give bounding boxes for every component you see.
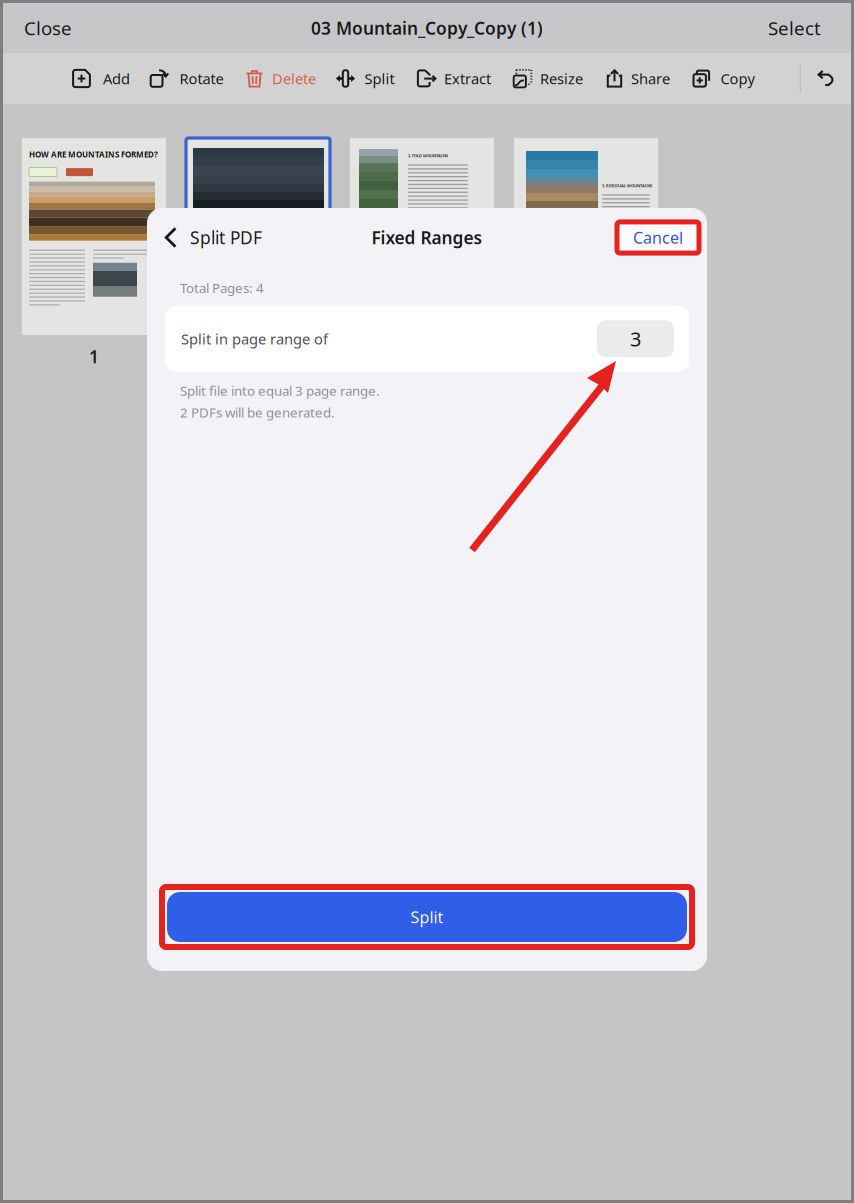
button[interactable]: Split PDF [163,218,262,257]
staticText: Fixed Ranges [371,226,482,249]
staticText: Share [631,69,670,88]
button[interactable]: Add [81,62,133,95]
staticText: 3 [630,325,641,352]
staticText: Select [768,16,821,40]
staticText: HOW ARE MOUNTAINS FORMED? [29,149,158,160]
staticText: 2 [253,345,263,368]
staticText: Delete [272,69,316,88]
staticText: Split [410,906,443,928]
staticText: Split [364,69,394,88]
staticText: 3. RESIDUAL MOUNTAINS [602,183,652,188]
staticText: 2. FOLD MOUNTAINS [408,153,448,158]
staticText: Resize [540,69,583,88]
staticText: Split in page range of [181,329,328,348]
button[interactable]: Undo [814,63,841,94]
button[interactable]: Cancel [617,222,699,253]
staticText: Split file into equal 3 page range. [180,382,380,399]
staticText: Rotate [179,69,223,88]
staticText: 2 PDFs will be generated. [180,403,335,421]
button[interactable]: 2 [186,138,330,368]
button[interactable]: 2. FOLD MOUNTAINS [350,138,494,368]
button[interactable]: Delete [250,62,319,95]
staticText: Split PDF [190,226,262,249]
button[interactable]: Split [339,62,399,95]
staticText: 03 Mountain_Copy_Copy (1) [311,16,543,39]
staticText: Extract [444,69,491,88]
button[interactable]: 3. RESIDUAL MOUNTAINS [514,138,658,368]
staticText: Cancel [633,227,683,248]
button[interactable]: Select [764,8,825,48]
button[interactable]: Close [20,8,76,48]
button[interactable]: Resize [516,62,587,95]
button[interactable]: HOW ARE MOUNTAINS FORMED? [22,138,166,368]
staticText: Copy [720,69,754,88]
staticText: Total Pages: 4 [180,279,264,297]
button[interactable]: Rotate [157,62,227,95]
staticText: 1 [89,345,99,368]
button[interactable]: Split [162,887,692,947]
staticText: Add [103,69,130,88]
staticText: Close [24,16,72,40]
button[interactable]: Extract [421,62,495,95]
button[interactable]: Share [611,62,672,95]
button[interactable]: Copy [695,62,761,95]
